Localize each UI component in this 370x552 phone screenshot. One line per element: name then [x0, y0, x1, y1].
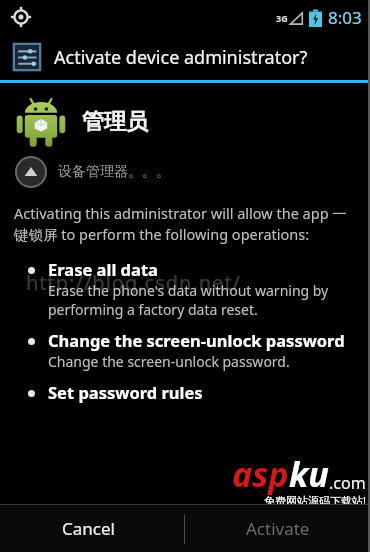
other: Collapse: [14, 155, 48, 189]
staticText: ku: [289, 451, 329, 497]
staticText: http://blog.csdn.net/: [26, 269, 242, 296]
staticText: Activate device administrator?: [54, 45, 308, 70]
other: Location: [10, 6, 32, 28]
button[interactable]: Cancel: [0, 505, 184, 552]
staticText: Erase the phone's data without warning b…: [48, 281, 356, 319]
staticText: 管理员: [82, 108, 148, 136]
staticText: Set password rules: [48, 381, 203, 403]
staticText: 3G: [276, 12, 288, 24]
button[interactable]: Activate: [185, 505, 370, 552]
staticText: Erase all data: [48, 258, 158, 280]
staticText: .com: [329, 472, 366, 494]
staticText: 免费网站源码下载站!: [264, 493, 366, 508]
staticText: 设备管理器。。。: [58, 163, 170, 181]
button[interactable]: Collapse: [14, 155, 356, 189]
staticText: Change the screen-unlock password: [48, 329, 345, 351]
staticText: Activate: [246, 517, 310, 540]
staticText: asp: [232, 451, 289, 497]
staticText: 8:03: [328, 6, 362, 29]
staticText: Cancel: [62, 517, 115, 540]
staticText: Activating this administrator will allow…: [14, 203, 356, 244]
staticText: Change the screen-unlock password.: [48, 352, 290, 371]
